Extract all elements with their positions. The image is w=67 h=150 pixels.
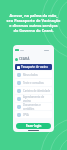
staticText: Fazer login [26, 124, 42, 128]
staticText: Passaporte de vacina [21, 65, 48, 69]
button[interactable]: Meus dados [15, 71, 52, 78]
staticText: Acesse, na palma da mão, seu Passaporte … [2, 13, 65, 33]
staticText: IPVA [23, 113, 29, 117]
staticText: CEARÁ [19, 57, 30, 61]
button[interactable]: Teste e consultas [15, 79, 52, 86]
button[interactable]: Passaporte de vacina [15, 64, 52, 70]
staticText: Documentos e certidões [23, 103, 52, 110]
staticText: Teste e consultas [23, 81, 44, 85]
button[interactable]: Carteira de identidade [15, 87, 52, 94]
button[interactable]: Documentos e certidões [15, 103, 52, 110]
staticText: Agendamento de vacina [23, 95, 52, 102]
button[interactable]: Agendamento de vacina [15, 95, 52, 102]
button[interactable]: IPVA [15, 111, 52, 118]
staticText: Carteira de identidade [23, 89, 51, 93]
button[interactable]: Fazer login [16, 123, 51, 129]
staticText: Meus dados [23, 73, 38, 77]
